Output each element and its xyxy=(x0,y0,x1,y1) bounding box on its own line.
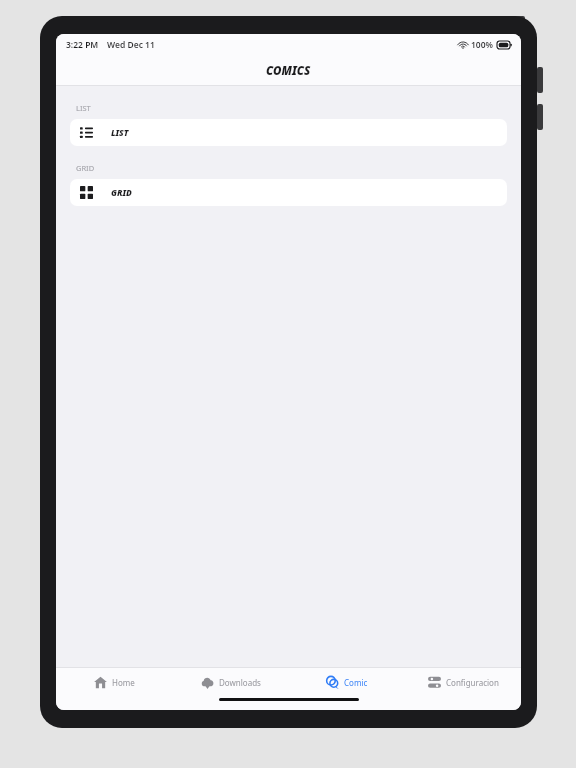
button[interactable]: Comic xyxy=(289,668,405,696)
staticText: Wed Dec 11 xyxy=(107,39,155,51)
staticText: Home xyxy=(112,677,135,688)
staticText: LIST xyxy=(76,103,91,113)
button[interactable]: Home xyxy=(56,668,173,696)
staticText: LIST xyxy=(111,127,129,139)
staticText: Downloads xyxy=(219,677,261,688)
staticText: COMICS xyxy=(266,63,311,79)
button[interactable]: GRID xyxy=(70,179,507,206)
staticText: GRID xyxy=(111,187,132,199)
staticText: 100% xyxy=(471,39,494,51)
button[interactable]: LIST xyxy=(70,119,507,146)
button[interactable]: Configuracion xyxy=(405,668,521,696)
staticText: Configuracion xyxy=(446,677,499,688)
staticText: GRID xyxy=(76,163,95,173)
staticText: 3:22 PM xyxy=(66,39,99,51)
button[interactable]: Downloads xyxy=(173,668,289,696)
staticText: Comic xyxy=(344,677,368,688)
